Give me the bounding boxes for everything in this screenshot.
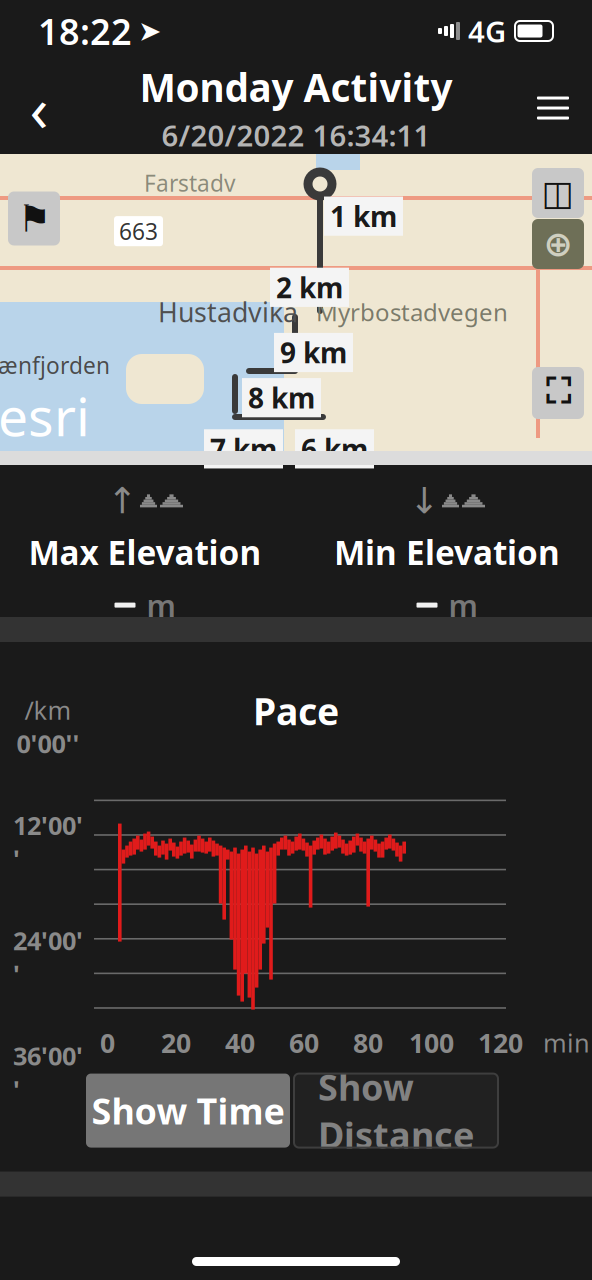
staticText: ◫ bbox=[541, 173, 574, 213]
staticText: 1 km bbox=[330, 197, 397, 235]
staticText: 18:22 bbox=[38, 7, 132, 55]
button[interactable]: Full screen bbox=[532, 367, 584, 419]
button[interactable]: Map type bbox=[532, 168, 584, 218]
staticText: ‹ bbox=[29, 67, 48, 149]
button[interactable]: Show Distance bbox=[294, 1074, 498, 1148]
staticText: 36'00'' bbox=[13, 1039, 83, 1106]
staticText: 6 km bbox=[301, 430, 368, 467]
staticText: 120 bbox=[478, 1025, 523, 1060]
staticText: m bbox=[448, 585, 477, 625]
staticText: ↑ bbox=[107, 480, 137, 521]
staticText: Farstadv bbox=[144, 168, 236, 198]
staticText: Myrbostadvegen bbox=[316, 296, 508, 328]
staticText: 0 bbox=[100, 1025, 115, 1060]
staticText: 40 bbox=[225, 1025, 255, 1060]
staticText: 12'00'' bbox=[13, 808, 83, 876]
staticText: 7 km bbox=[210, 430, 277, 467]
staticText: 9 km bbox=[280, 334, 347, 371]
staticText: 20 bbox=[161, 1025, 191, 1060]
staticText: ⚑ bbox=[17, 197, 50, 240]
staticText: 4G bbox=[468, 11, 506, 50]
staticText: Show Time bbox=[91, 1087, 284, 1134]
button[interactable]: Waypoints bbox=[8, 191, 60, 245]
staticText: Show Distance bbox=[318, 1063, 474, 1158]
staticText: ⊕ bbox=[543, 224, 572, 264]
staticText: 663 bbox=[119, 216, 158, 246]
staticText: 8 km bbox=[248, 379, 315, 416]
button[interactable]: Show Time bbox=[86, 1074, 290, 1148]
staticText: ➤ bbox=[138, 15, 161, 47]
staticText: 0'00'' bbox=[16, 727, 79, 760]
staticText: 100 bbox=[409, 1025, 454, 1060]
staticText: Pace bbox=[253, 686, 339, 736]
staticText: Min Elevation bbox=[334, 530, 560, 574]
button[interactable]: Back bbox=[0, 68, 78, 148]
staticText: 60 bbox=[289, 1025, 319, 1060]
staticText: ↓ bbox=[409, 480, 439, 521]
staticText: esri bbox=[0, 380, 90, 451]
staticText: 24'00'' bbox=[13, 924, 83, 991]
staticText: Max Elevation bbox=[28, 530, 261, 574]
staticText: m bbox=[146, 585, 175, 625]
button[interactable]: Menu bbox=[514, 68, 592, 148]
staticText: ænfjorden bbox=[0, 350, 110, 380]
staticText: 6/20/2022 16:34:11 bbox=[161, 116, 430, 155]
button[interactable]: Satellite bbox=[532, 219, 584, 269]
staticText: 2 km bbox=[276, 269, 343, 306]
staticText: min bbox=[543, 1026, 590, 1059]
staticText: 80 bbox=[353, 1025, 383, 1060]
staticText: /km bbox=[24, 693, 71, 727]
staticText: Monday Activity bbox=[139, 61, 452, 113]
staticText: Hustadvika bbox=[158, 294, 298, 330]
staticText: ⛶ bbox=[546, 376, 570, 410]
